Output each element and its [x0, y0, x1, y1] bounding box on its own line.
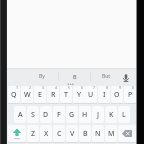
staticText: J [97, 110, 100, 120]
staticText: R [51, 90, 56, 100]
staticText: X [44, 129, 49, 139]
staticText: S [31, 110, 35, 120]
staticText: But [102, 73, 111, 80]
staticText: B [73, 73, 77, 80]
staticText: 2 [29, 86, 32, 90]
staticText: 3 [42, 86, 45, 90]
staticText: P [128, 90, 133, 100]
button[interactable]: Y [73, 86, 85, 103]
staticText: By [39, 73, 45, 80]
staticText: W [24, 90, 31, 100]
button[interactable]: V [66, 125, 78, 142]
button[interactable]: W [21, 86, 33, 103]
button[interactable]: But [92, 69, 121, 83]
staticText: 1 [16, 86, 19, 90]
staticText: B [83, 129, 88, 139]
staticText: V [70, 129, 75, 139]
staticText: G [69, 110, 75, 120]
staticText: K [109, 110, 114, 120]
staticText: M [108, 129, 115, 139]
button[interactable]: S [27, 106, 39, 123]
button[interactable]: C [53, 125, 65, 142]
staticText: N [95, 129, 101, 139]
staticText: 8 [106, 86, 109, 90]
staticText: 5 [68, 86, 71, 90]
button[interactable] [118, 125, 136, 142]
staticText: T [64, 90, 68, 100]
button[interactable]: J [92, 106, 104, 123]
staticText: E [38, 90, 42, 100]
button[interactable]: N [92, 125, 104, 142]
button[interactable]: A [14, 106, 26, 123]
staticText: F [57, 110, 61, 120]
button[interactable]: O [111, 86, 123, 103]
button[interactable] [8, 125, 26, 142]
button[interactable]: D [40, 106, 52, 123]
button[interactable]: Q [8, 86, 20, 103]
staticText: C [57, 129, 62, 139]
staticText: 9 [119, 86, 122, 90]
staticText: U [88, 90, 94, 100]
staticText: 7 [93, 86, 96, 90]
button[interactable]: I [98, 86, 110, 103]
staticText: 4 [55, 86, 58, 90]
staticText: I [103, 90, 106, 100]
staticText: Q [11, 90, 17, 100]
button[interactable]: E [34, 86, 46, 103]
button[interactable]: L [118, 106, 130, 123]
button[interactable]: B [60, 69, 89, 83]
button[interactable]: M [105, 125, 117, 142]
button[interactable]: X [40, 125, 52, 142]
staticText: A [18, 110, 23, 120]
button[interactable]: G [66, 106, 78, 123]
staticText: D [43, 110, 49, 120]
button[interactable]: Z [27, 125, 39, 142]
button[interactable]: H [79, 106, 91, 123]
staticText: H [82, 110, 88, 120]
staticText: Z [31, 129, 36, 139]
button[interactable]: R [47, 86, 59, 103]
button[interactable]: By [27, 69, 56, 83]
staticText: 0 [132, 86, 135, 90]
button[interactable]: T [60, 86, 72, 103]
button[interactable]: P [124, 86, 136, 103]
staticText: 6 [81, 86, 84, 90]
button[interactable] [119, 70, 133, 84]
staticText: L [122, 110, 126, 120]
staticText: O [114, 90, 120, 100]
button[interactable]: K [105, 106, 117, 123]
button[interactable]: F [53, 106, 65, 123]
button[interactable]: U [85, 86, 97, 103]
button[interactable]: B [79, 125, 91, 142]
staticText: Y [77, 90, 82, 100]
